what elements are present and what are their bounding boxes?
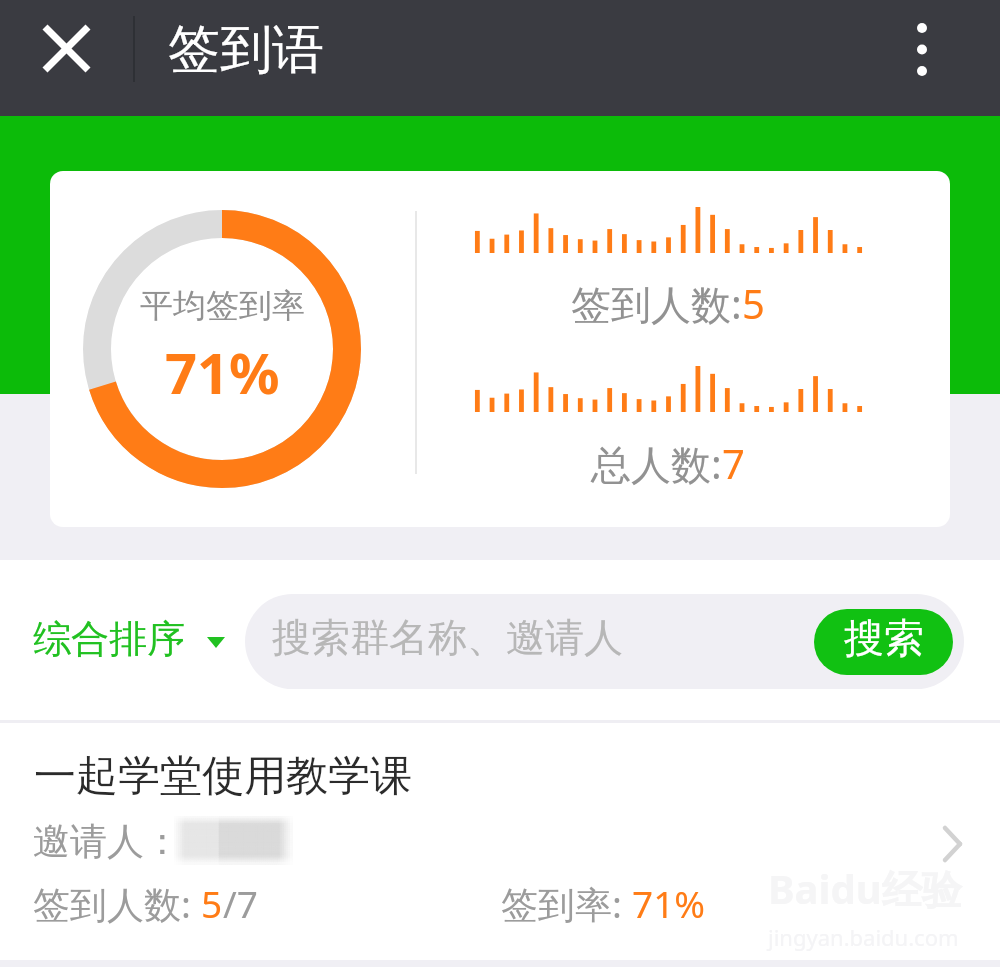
staticText: jingyan.baidu.com (768, 922, 959, 952)
staticText: 签到人数: (571, 276, 742, 331)
button[interactable]: 综合排序 (33, 615, 220, 663)
staticText: 71% (165, 334, 280, 410)
button[interactable]: 搜索群名称、邀请人 (245, 594, 964, 689)
staticText: 签到率: (501, 878, 632, 929)
button[interactable]: More options (878, 7, 966, 95)
staticText: 搜索群名称、邀请人 (272, 613, 623, 662)
staticText: Baidu经验 (768, 861, 962, 916)
staticText: 平均签到率 (140, 285, 305, 327)
button[interactable]: 一起学堂使用教学课 (0, 722, 1000, 960)
button[interactable]: 搜索 (814, 609, 953, 675)
staticText: 71% (632, 878, 706, 928)
staticText: 总人数: (591, 436, 722, 491)
staticText: 签到语 (168, 17, 324, 83)
staticText: 综合排序 (33, 615, 185, 663)
staticText: 7 (722, 436, 745, 490)
staticText: 签到人数: (33, 878, 201, 929)
staticText: 邀请人： (33, 818, 181, 865)
button[interactable]: Close (22, 7, 110, 95)
staticText: /7 (223, 878, 258, 928)
staticText: 5 (742, 276, 765, 330)
staticText: 一起学堂使用教学课 (34, 750, 412, 803)
staticText: 搜索 (844, 613, 924, 663)
staticText: 5 (201, 878, 223, 928)
